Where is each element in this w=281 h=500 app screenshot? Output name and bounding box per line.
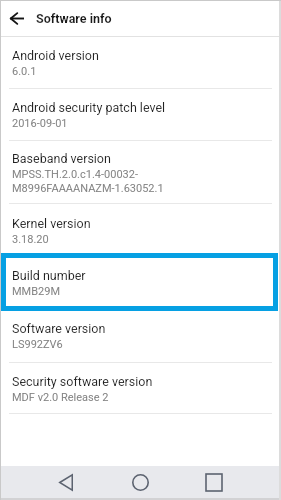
staticText: Kernel version: [12, 216, 91, 231]
button[interactable]: Back: [43, 466, 89, 498]
staticText: 2016-09-01: [12, 117, 68, 130]
staticText: Software version: [12, 321, 106, 336]
button[interactable]: Security software version: [0, 362, 281, 413]
staticText: Android security patch level: [12, 100, 166, 115]
staticText: 3.18.20: [12, 233, 49, 246]
button[interactable]: Build number: [0, 255, 281, 308]
button[interactable]: Android security patch level: [0, 88, 281, 140]
staticText: Android version: [12, 48, 99, 63]
button[interactable]: Home: [117, 466, 163, 498]
staticText: Build number: [12, 268, 86, 283]
button[interactable]: Baseband version: [0, 140, 281, 203]
staticText: MDF v2.0 Release 2: [12, 391, 109, 404]
staticText: MMB29M: [12, 285, 61, 298]
staticText: Software info: [36, 11, 112, 26]
staticText: LS992ZV6: [12, 338, 63, 351]
staticText: Security software version: [12, 374, 153, 389]
staticText: 6.0.1: [12, 65, 37, 78]
staticText: Baseband version: [12, 151, 111, 166]
button[interactable]: Kernel version: [0, 204, 281, 256]
button[interactable]: Software version: [0, 308, 281, 362]
button[interactable]: Android version: [0, 36, 281, 88]
button[interactable]: Recent apps: [191, 466, 237, 498]
staticText: MPSS.TH.2.0.c1.4-00032-: [12, 168, 138, 181]
button[interactable]: Back: [0, 0, 34, 36]
staticText: M8996FAAAANAZM-1.63052.1: [12, 182, 164, 195]
